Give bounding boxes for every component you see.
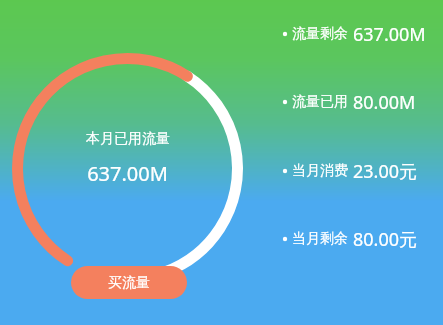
staticText: 买流量 [108, 274, 150, 292]
staticText: 本月已用流量 [86, 130, 170, 148]
button[interactable]: 买流量 [71, 266, 187, 299]
button[interactable]: 流量已用 [280, 90, 440, 114]
staticText: 23.00元 [353, 159, 418, 183]
button[interactable]: 当月剩余 [280, 227, 440, 251]
button[interactable]: 当月消费 [280, 159, 440, 183]
staticText: 637.00M [87, 160, 168, 187]
staticText: 流量剩余 [292, 25, 348, 43]
staticText: 流量已用 [292, 93, 348, 111]
staticText: 当月消费 [292, 162, 348, 180]
staticText: 637.00M [353, 22, 426, 46]
staticText: 80.00M [353, 90, 416, 114]
staticText: 80.00元 [353, 227, 418, 251]
button[interactable]: 流量剩余 [280, 22, 440, 46]
staticText: 当月剩余 [292, 230, 348, 248]
